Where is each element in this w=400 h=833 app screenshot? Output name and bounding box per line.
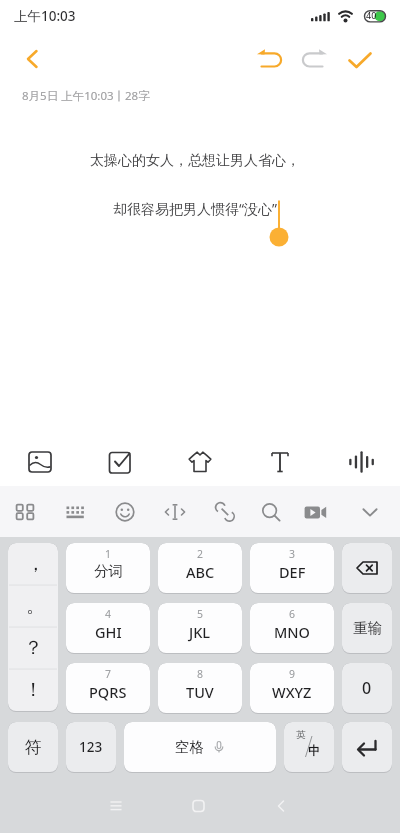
button[interactable]: [350, 486, 400, 537]
button[interactable]: ！: [8, 669, 58, 711]
staticText: TUV: [186, 682, 214, 702]
staticText: 6: [289, 607, 296, 621]
button[interactable]: [80, 437, 160, 486]
staticText: WXYZ: [272, 682, 312, 702]
button[interactable]: [342, 722, 392, 773]
button[interactable]: ？: [8, 627, 58, 669]
staticText: 空格: [175, 738, 204, 756]
staticText: 8月5日 上午10:03丨28字: [22, 88, 150, 104]
staticText: 123: [79, 738, 103, 756]
button[interactable]: [160, 437, 240, 486]
button[interactable]: [240, 437, 320, 486]
staticText: ABC: [186, 562, 215, 582]
button[interactable]: 0: [342, 663, 392, 714]
staticText: 9: [289, 667, 296, 681]
button[interactable]: 2: [158, 543, 242, 594]
button[interactable]: [50, 486, 100, 537]
button[interactable]: [0, 32, 56, 80]
button[interactable]: 空格: [124, 722, 276, 773]
staticText: 3: [289, 547, 296, 561]
button[interactable]: [200, 486, 250, 537]
staticText: 英: [296, 729, 306, 741]
button[interactable]: 。: [8, 585, 58, 627]
button[interactable]: 9: [250, 663, 334, 714]
staticText: 7: [105, 667, 112, 681]
staticText: 太操心的女人，总想让男人省心，: [0, 152, 395, 170]
staticText: GHI: [95, 622, 122, 642]
button[interactable]: 4: [66, 603, 150, 654]
button[interactable]: [314, 32, 356, 80]
button[interactable]: 英: [284, 722, 334, 773]
button[interactable]: 6: [250, 603, 334, 654]
staticText: 分词: [94, 562, 123, 580]
button[interactable]: 8: [158, 663, 242, 714]
staticText: 0: [362, 677, 372, 699]
staticText: 却很容易把男人惯得“没心”: [0, 199, 395, 218]
staticText: 40: [366, 9, 377, 21]
button[interactable]: 符: [8, 722, 58, 773]
staticText: ！: [24, 678, 43, 702]
button[interactable]: 5: [158, 603, 242, 654]
staticText: 中: [308, 743, 320, 758]
button[interactable]: [320, 437, 400, 486]
staticText: 4: [105, 607, 112, 621]
button[interactable]: [0, 486, 50, 537]
button[interactable]: [272, 32, 314, 80]
button[interactable]: 3: [250, 543, 334, 594]
button[interactable]: 7: [66, 663, 150, 714]
staticText: 符: [25, 737, 42, 758]
staticText: DEF: [279, 562, 306, 582]
button[interactable]: 重输: [342, 603, 392, 654]
button[interactable]: [150, 486, 200, 537]
staticText: 8: [197, 667, 204, 681]
button[interactable]: [250, 486, 300, 537]
staticText: ，: [26, 552, 45, 576]
staticText: JKL: [189, 622, 211, 642]
button[interactable]: [100, 486, 150, 537]
button[interactable]: [300, 486, 350, 537]
button[interactable]: [342, 543, 392, 594]
button[interactable]: 123: [66, 722, 116, 773]
staticText: ？: [24, 636, 43, 660]
staticText: MNO: [274, 622, 310, 642]
staticText: 5: [197, 607, 204, 621]
staticText: 上午10:03: [14, 7, 76, 25]
staticText: 。: [26, 594, 45, 618]
staticText: 2: [197, 547, 204, 561]
button[interactable]: [0, 437, 80, 486]
staticText: PQRS: [89, 682, 127, 702]
button[interactable]: ，: [8, 543, 58, 585]
button[interactable]: 1: [66, 543, 150, 594]
staticText: 1: [105, 547, 112, 561]
staticText: 重输: [353, 619, 382, 637]
button[interactable]: [356, 32, 400, 80]
